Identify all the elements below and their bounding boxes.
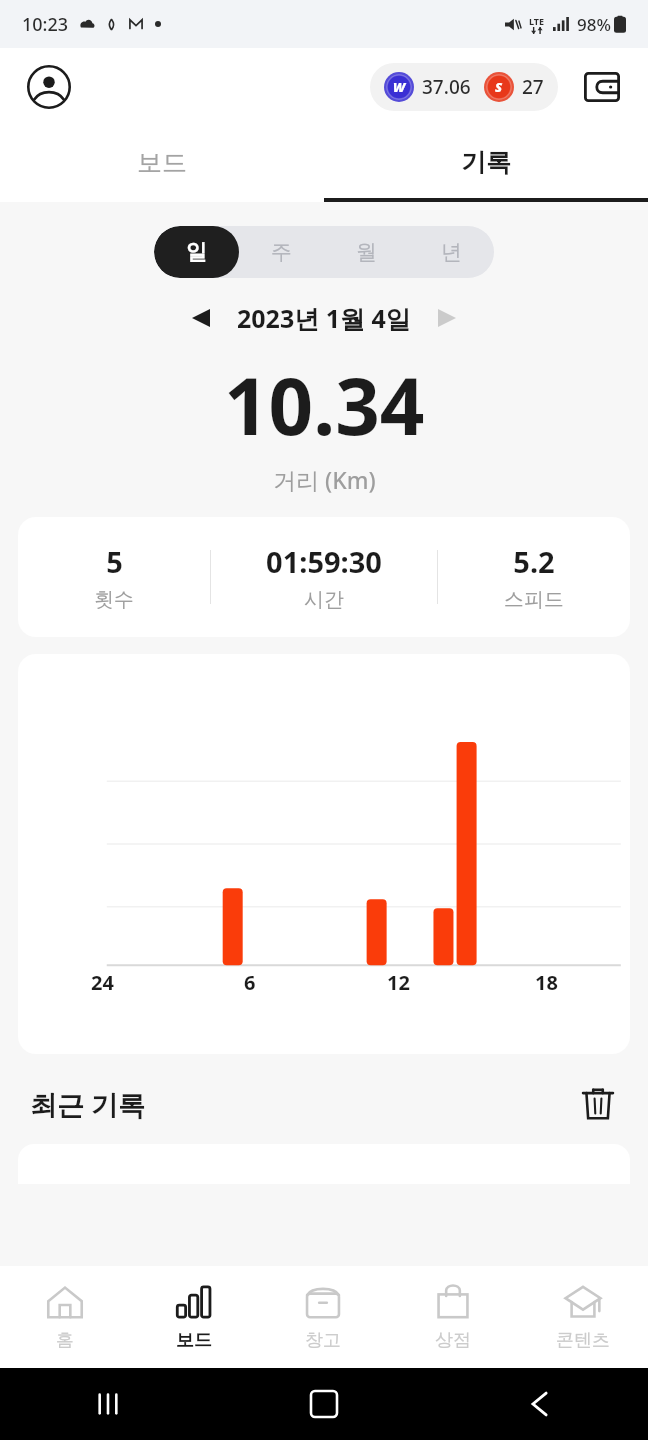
- staticText: LTE: [529, 15, 545, 27]
- button[interactable]: Next day: [425, 296, 469, 340]
- button[interactable]: Wallet: [580, 65, 624, 109]
- staticText: 5.2: [513, 542, 555, 581]
- staticText: 2023년 1월 4일: [237, 301, 411, 335]
- button[interactable]: 기록: [324, 126, 648, 198]
- button[interactable]: 창고: [258, 1266, 388, 1368]
- staticText: 상점: [435, 1329, 471, 1352]
- staticText: 37.06: [422, 74, 471, 100]
- staticText: 98%: [577, 13, 611, 36]
- staticText: 기록: [461, 147, 511, 178]
- button[interactable]: Profile: [26, 64, 72, 110]
- button[interactable]: 홈: [0, 1266, 129, 1368]
- button[interactable]: 주: [239, 226, 324, 278]
- button[interactable]: 5: [18, 517, 630, 637]
- staticText: 월: [356, 239, 377, 265]
- staticText: 스피드: [504, 587, 564, 612]
- staticText: 콘텐츠: [556, 1329, 610, 1352]
- button[interactable]: Delete records: [574, 1080, 622, 1128]
- staticText: 6: [244, 969, 256, 996]
- button[interactable]: 콘텐츠: [518, 1266, 648, 1368]
- staticText: 5: [106, 542, 123, 581]
- staticText: S: [495, 78, 503, 96]
- staticText: 창고: [305, 1329, 341, 1352]
- staticText: 10.34: [224, 352, 425, 458]
- staticText: 횟수: [94, 587, 134, 612]
- button[interactable]: W: [370, 63, 558, 111]
- staticText: 일: [186, 239, 207, 265]
- staticText: 24: [91, 969, 114, 996]
- staticText: 보드: [137, 147, 187, 178]
- button[interactable]: 일: [154, 226, 239, 278]
- button[interactable]: 24: [18, 654, 630, 1054]
- staticText: 보드: [176, 1329, 212, 1352]
- staticText: 최근 기록: [30, 1086, 146, 1123]
- button[interactable]: 년: [409, 226, 494, 278]
- staticText: 거리 (Km): [273, 464, 376, 495]
- staticText: 홈: [56, 1329, 74, 1352]
- button[interactable]: 월: [324, 226, 409, 278]
- staticText: 12: [387, 969, 410, 996]
- staticText: W: [393, 78, 406, 96]
- staticText: 시간: [304, 587, 344, 612]
- button[interactable]: 보드: [129, 1266, 258, 1368]
- staticText: 01:59:30: [266, 542, 382, 581]
- staticText: 18: [535, 969, 558, 996]
- button[interactable]: 상점: [388, 1266, 518, 1368]
- staticText: 년: [441, 239, 462, 265]
- staticText: 10:23: [22, 12, 69, 37]
- staticText: 주: [271, 239, 292, 265]
- button[interactable]: 보드: [0, 126, 324, 198]
- button[interactable]: Previous day: [179, 296, 223, 340]
- staticText: 27: [522, 74, 544, 100]
